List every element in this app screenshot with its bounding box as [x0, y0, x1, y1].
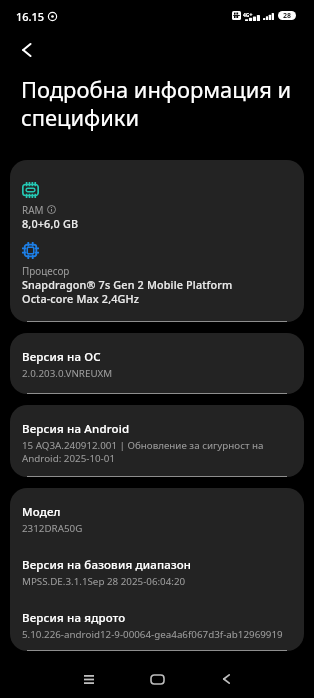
staticText: 16.15	[16, 9, 45, 24]
staticText: Версия на базовия диапазон	[22, 557, 192, 573]
staticText: Версия на ядрото	[22, 610, 126, 626]
staticText: 15 AQ3A.240912.001 | Обновление за сигур…	[22, 439, 264, 465]
staticText: Snapdragon® 7s Gen 2 Mobile Platform Oct…	[22, 277, 233, 307]
staticText: Версия на Android	[22, 421, 130, 437]
staticText: Версия на ОС	[22, 349, 101, 365]
staticText: RAM	[22, 203, 44, 216]
staticText: 5.10.226-android12-9-00064-gea4a6f067d3f…	[22, 628, 283, 641]
button[interactable]: Recent apps	[55, 659, 123, 698]
staticText: Подробна информация и специфики	[21, 75, 306, 132]
staticText: Модел	[22, 504, 61, 520]
button[interactable]: Модел	[10, 488, 304, 651]
staticText: 28	[283, 11, 292, 20]
staticText: 8,0+6,0 GB	[22, 216, 79, 231]
staticText: 4G+	[243, 12, 253, 19]
staticText: MPSS.DE.3.1.1Sep 28 2025-06:04:20	[22, 575, 186, 588]
staticText: 2312DRA50G	[22, 522, 83, 535]
button[interactable]: Back	[192, 659, 260, 698]
staticText: Процесор	[22, 264, 70, 277]
button[interactable]: Версия на ОС	[10, 333, 304, 394]
staticText: 2.0.203.0.VNREUXM	[22, 367, 113, 380]
button[interactable]: Версия на Android	[10, 405, 304, 477]
button[interactable]: RAM	[10, 160, 304, 322]
button[interactable]: Home	[123, 659, 191, 698]
button[interactable]: Back	[10, 34, 42, 66]
